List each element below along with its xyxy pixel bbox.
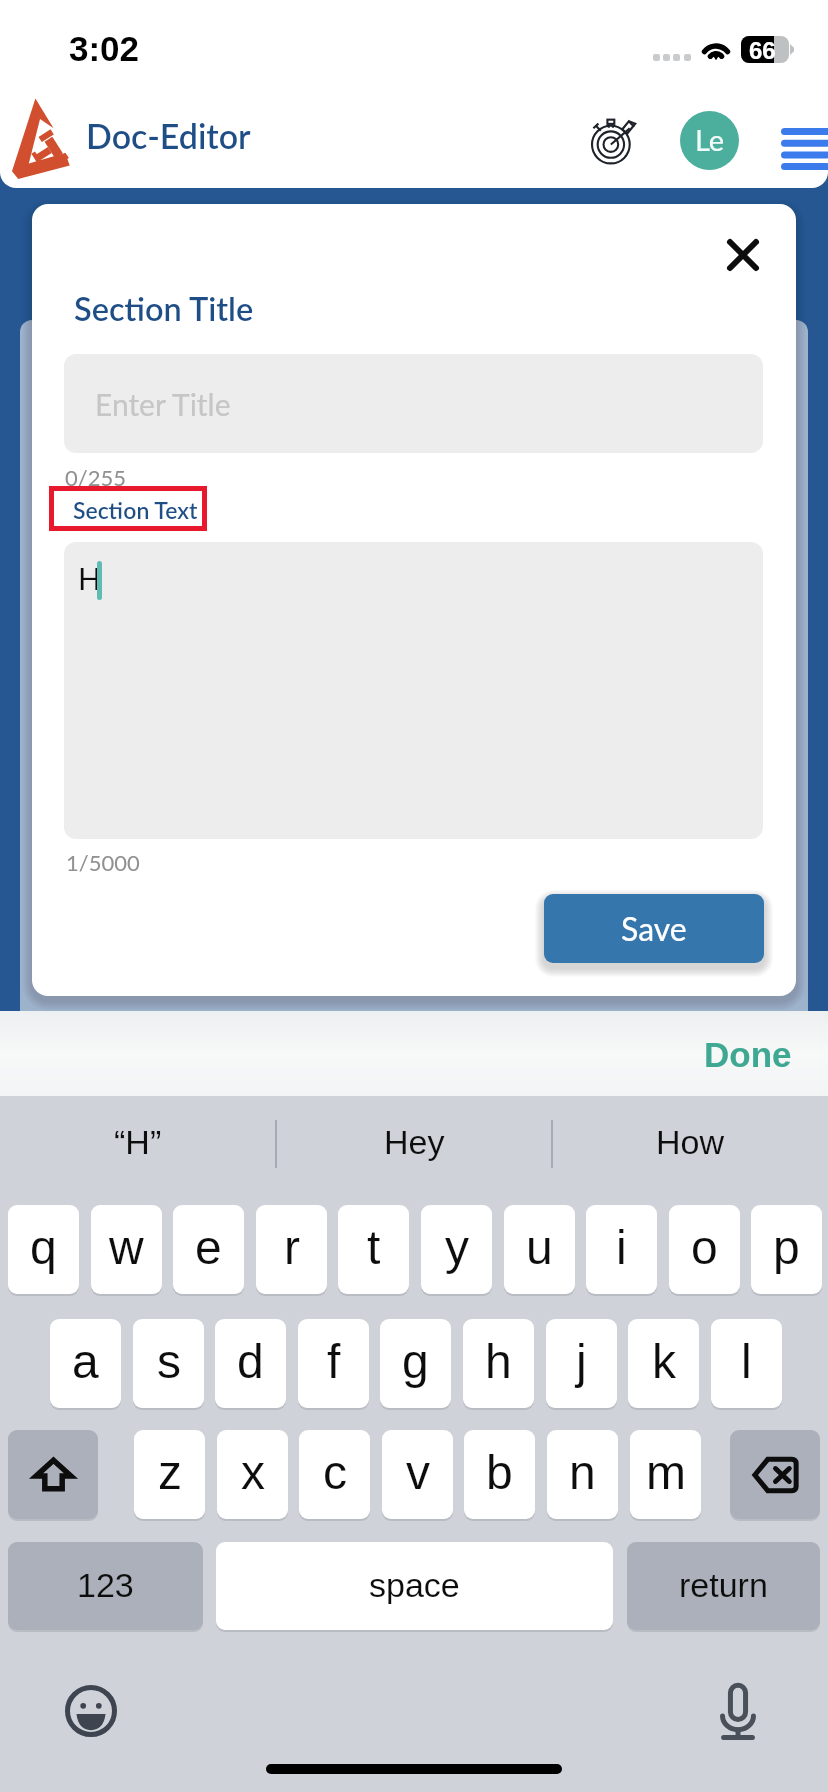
staticText: t bbox=[367, 1221, 381, 1275]
button[interactable]: Menu bbox=[766, 110, 828, 188]
button[interactable]: Close bbox=[703, 215, 783, 295]
staticText: k bbox=[652, 1335, 676, 1389]
staticText: w bbox=[109, 1221, 144, 1275]
staticText: l bbox=[741, 1335, 752, 1389]
staticText: Hey bbox=[384, 1123, 445, 1161]
button[interactable]: n bbox=[547, 1430, 618, 1519]
staticText: e bbox=[195, 1221, 222, 1275]
button[interactable]: i bbox=[586, 1205, 657, 1294]
button[interactable]: Section Text bbox=[73, 496, 198, 524]
staticText: 123 bbox=[77, 1566, 134, 1604]
staticText: a bbox=[72, 1335, 99, 1389]
button[interactable]: return bbox=[627, 1542, 820, 1630]
staticText: o bbox=[691, 1221, 718, 1275]
staticText: 66 bbox=[749, 37, 776, 64]
button[interactable]: y bbox=[421, 1205, 492, 1294]
staticText: Save bbox=[621, 909, 687, 947]
staticText: j bbox=[576, 1335, 587, 1389]
button[interactable]: j bbox=[546, 1319, 617, 1408]
button[interactable]: v bbox=[382, 1430, 453, 1519]
button[interactable]: Dictation bbox=[709, 1677, 767, 1745]
button[interactable]: z bbox=[134, 1430, 205, 1519]
button[interactable]: 123 bbox=[8, 1542, 203, 1630]
button[interactable]: u bbox=[504, 1205, 575, 1294]
staticText: Enter Title bbox=[95, 386, 231, 422]
staticText: i bbox=[616, 1221, 627, 1275]
staticText: g bbox=[402, 1335, 429, 1389]
button[interactable]: Shift bbox=[8, 1430, 98, 1519]
staticText: x bbox=[241, 1446, 265, 1500]
staticText: 0/255 bbox=[65, 464, 126, 490]
button[interactable]: x bbox=[217, 1430, 288, 1519]
button[interactable]: l bbox=[711, 1319, 782, 1408]
button[interactable]: t bbox=[338, 1205, 409, 1294]
staticText: H bbox=[78, 560, 101, 596]
button[interactable]: Hey bbox=[276, 1096, 552, 1188]
staticText: return bbox=[679, 1566, 768, 1604]
button[interactable]: p bbox=[751, 1205, 822, 1294]
staticText: q bbox=[30, 1221, 57, 1275]
staticText: p bbox=[773, 1221, 800, 1275]
staticText: z bbox=[158, 1446, 182, 1500]
staticText: v bbox=[406, 1446, 430, 1500]
button[interactable]: How bbox=[552, 1096, 828, 1188]
button[interactable]: “H” bbox=[0, 1096, 276, 1188]
button[interactable]: Done bbox=[690, 1025, 805, 1083]
button[interactable]: Save bbox=[544, 894, 764, 963]
button[interactable]: Le bbox=[680, 111, 739, 170]
staticText: r bbox=[284, 1221, 300, 1275]
button[interactable]: r bbox=[256, 1205, 327, 1294]
button[interactable]: f bbox=[298, 1319, 369, 1408]
staticText: d bbox=[237, 1335, 264, 1389]
staticText: Done bbox=[704, 1035, 792, 1074]
button[interactable]: h bbox=[463, 1319, 534, 1408]
button[interactable]: k bbox=[628, 1319, 699, 1408]
staticText: m bbox=[646, 1446, 686, 1500]
staticText: s bbox=[157, 1335, 181, 1389]
button[interactable]: o bbox=[669, 1205, 740, 1294]
staticText: Doc-Editor bbox=[86, 115, 251, 156]
button[interactable]: c bbox=[299, 1430, 370, 1519]
button[interactable]: H bbox=[64, 542, 763, 839]
button[interactable]: s bbox=[133, 1319, 204, 1408]
button[interactable]: Enter Title bbox=[64, 354, 763, 453]
button[interactable]: Emoji keyboard bbox=[62, 1682, 120, 1740]
button[interactable]: w bbox=[91, 1205, 162, 1294]
button[interactable]: g bbox=[380, 1319, 451, 1408]
staticText: “H” bbox=[114, 1123, 162, 1161]
button[interactable]: Goals bbox=[586, 112, 643, 170]
button[interactable]: Backspace bbox=[730, 1430, 820, 1519]
staticText: h bbox=[485, 1335, 512, 1389]
staticText: 3:02 bbox=[69, 29, 140, 68]
button[interactable]: e bbox=[173, 1205, 244, 1294]
staticText: Le bbox=[695, 122, 725, 157]
button[interactable]: q bbox=[8, 1205, 79, 1294]
staticText: b bbox=[486, 1446, 513, 1500]
staticText: y bbox=[445, 1221, 469, 1275]
staticText: space bbox=[369, 1566, 460, 1604]
staticText: c bbox=[323, 1446, 347, 1500]
button[interactable]: a bbox=[50, 1319, 121, 1408]
button[interactable]: d bbox=[215, 1319, 286, 1408]
staticText: u bbox=[526, 1221, 553, 1275]
staticText: How bbox=[656, 1123, 725, 1161]
button[interactable]: m bbox=[630, 1430, 701, 1519]
staticText: f bbox=[327, 1335, 341, 1389]
button[interactable]: b bbox=[464, 1430, 535, 1519]
staticText: n bbox=[569, 1446, 596, 1500]
button[interactable]: space bbox=[216, 1542, 613, 1630]
staticText: Section Title bbox=[74, 289, 254, 328]
staticText: 1/5000 bbox=[66, 849, 140, 875]
